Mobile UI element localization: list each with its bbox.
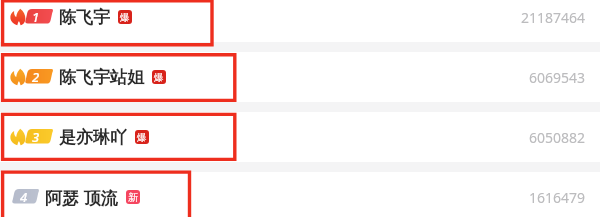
staticText: 新 [128,191,138,204]
staticText: 3 [32,128,40,146]
staticText: 陈飞宇站姐 [59,67,144,88]
staticText: 4 [20,188,28,206]
staticText: 6069543 [529,68,586,87]
staticText: 1 [32,8,40,26]
staticText: 爆 [154,71,164,84]
staticText: 爆 [120,11,130,24]
button[interactable]: 3 [0,112,600,162]
button[interactable]: 2 [0,52,600,102]
button[interactable]: 1 [0,0,600,42]
staticText: 6050882 [529,128,586,147]
staticText: 1616479 [529,188,586,207]
staticText: 是亦琳吖 [59,127,127,148]
staticText: 爆 [137,131,147,144]
button[interactable]: 4 [0,172,600,217]
staticText: 2 [32,68,40,86]
staticText: 21187464 [521,8,586,27]
staticText: 阿瑟 顶流 [45,186,118,209]
staticText: 陈飞宇 [59,7,110,28]
